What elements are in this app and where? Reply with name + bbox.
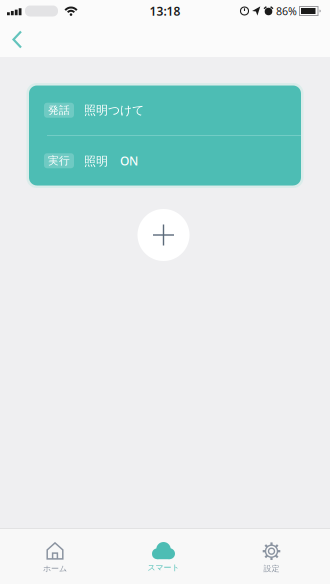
button[interactable]: スマート (110, 529, 220, 584)
staticText: 実行 (48, 154, 70, 167)
staticText: 86% (276, 4, 297, 18)
staticText: 発話 (48, 104, 70, 117)
staticText: スマート (147, 563, 179, 572)
button[interactable]: Add (137, 209, 189, 261)
staticText: 13:18 (149, 3, 180, 19)
staticText: 照明つけて (84, 103, 144, 118)
staticText: 設定 (263, 564, 279, 573)
button[interactable]: Back (0, 22, 22, 56)
staticText: 照明 ON (84, 153, 138, 169)
button[interactable]: 発話 (29, 85, 301, 185)
button[interactable]: 設定 (220, 529, 330, 584)
staticText: ホーム (43, 564, 67, 573)
button[interactable]: ホーム (0, 529, 110, 584)
